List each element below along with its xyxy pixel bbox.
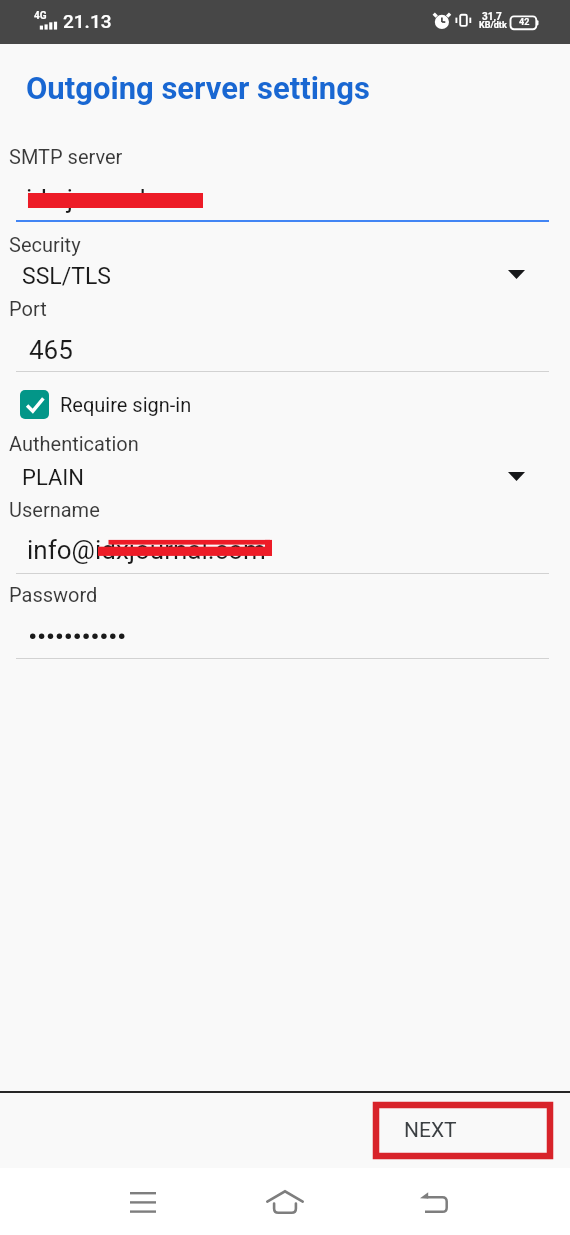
- staticText: Username: [9, 498, 100, 521]
- staticText: PLAIN: [22, 465, 84, 491]
- button[interactable]: Home: [255, 1172, 315, 1232]
- staticText: Require sign-in: [60, 393, 192, 416]
- staticText: NEXT: [404, 1118, 457, 1143]
- staticText: Security: [9, 233, 81, 256]
- staticText: Authentication: [9, 432, 139, 455]
- staticText: idx.journal.com: [26, 184, 204, 214]
- staticText: KB/dtk: [479, 20, 507, 31]
- staticText: Port: [9, 297, 47, 320]
- button[interactable]: Open dropdown: [494, 454, 538, 498]
- staticText: Outgoing server settings: [26, 70, 370, 106]
- staticText: 42: [519, 17, 530, 28]
- staticText: 4G: [34, 10, 47, 22]
- staticText: SSL/TLS: [22, 263, 111, 290]
- staticText: info@idxjournal.com: [27, 535, 266, 565]
- button[interactable]: Open dropdown: [494, 252, 538, 296]
- staticText: 31,7: [482, 11, 502, 23]
- button[interactable]: NEXT: [376, 1105, 550, 1156]
- button[interactable]: Back: [404, 1172, 464, 1232]
- staticText: SMTP server: [9, 145, 123, 168]
- staticText: Password: [9, 583, 98, 606]
- staticText: 465: [29, 335, 73, 365]
- button[interactable]: Recents: [113, 1172, 173, 1232]
- button[interactable]: Require sign-in: [20, 389, 192, 419]
- staticText: 21.13: [63, 10, 112, 32]
